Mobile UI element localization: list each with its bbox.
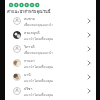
staticText: เพื่อนของคุณแนะนำ xyxy=(24,22,53,27)
button[interactable]: กานดา xyxy=(5,56,96,70)
button[interactable]: สวนสนุกดี xyxy=(5,28,96,42)
staticText: แนะนำโดยเพื่อนคุณ xyxy=(24,36,53,41)
button[interactable]: Open details xyxy=(85,73,93,81)
staticText: แนะนำโดยเพื่อนคุณ xyxy=(24,64,53,69)
staticText: กานดา xyxy=(24,58,35,64)
staticText: ปรีชา xyxy=(24,86,33,92)
button[interactable]: มานี xyxy=(5,70,96,84)
staticText: มานี xyxy=(24,72,31,78)
staticText: คำแนะนำสำหรับคุณวันนี้ xyxy=(7,8,51,14)
button[interactable]: Open details xyxy=(85,59,93,67)
button[interactable]: Open details xyxy=(85,17,93,25)
staticText: แนะนำโดยเพื่อนคุณ xyxy=(24,78,53,83)
staticText: วิภาวดี xyxy=(24,44,35,50)
button[interactable]: ปรีชา xyxy=(5,84,96,98)
button[interactable]: สมชาย xyxy=(5,14,96,28)
staticText: สมชาย xyxy=(24,16,35,22)
staticText: เพื่อนของคุณแนะนำ xyxy=(24,50,53,55)
staticText: สวนสนุกดี xyxy=(24,30,40,36)
button[interactable]: วิภาวดี xyxy=(5,42,96,56)
button[interactable]: Open details xyxy=(85,31,93,39)
button[interactable]: Open details xyxy=(85,87,93,95)
button[interactable]: Open details xyxy=(85,45,93,53)
staticText: แนะนำโดยเพื่อนคุณ xyxy=(24,92,53,97)
